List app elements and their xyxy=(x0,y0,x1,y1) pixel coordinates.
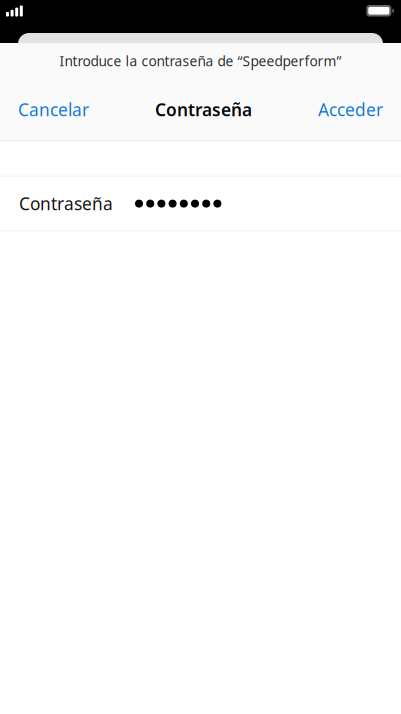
staticText: Introduce la contraseña de “Speedperform… xyxy=(59,52,341,70)
button[interactable]: Contraseña xyxy=(0,177,401,231)
button[interactable]: Cancelar xyxy=(18,87,101,132)
staticText: Contraseña xyxy=(155,98,252,121)
staticText: Contraseña xyxy=(19,192,113,215)
staticText: Cancelar xyxy=(18,98,89,121)
staticText: Acceder xyxy=(318,98,383,121)
button[interactable]: Acceder xyxy=(306,87,383,132)
